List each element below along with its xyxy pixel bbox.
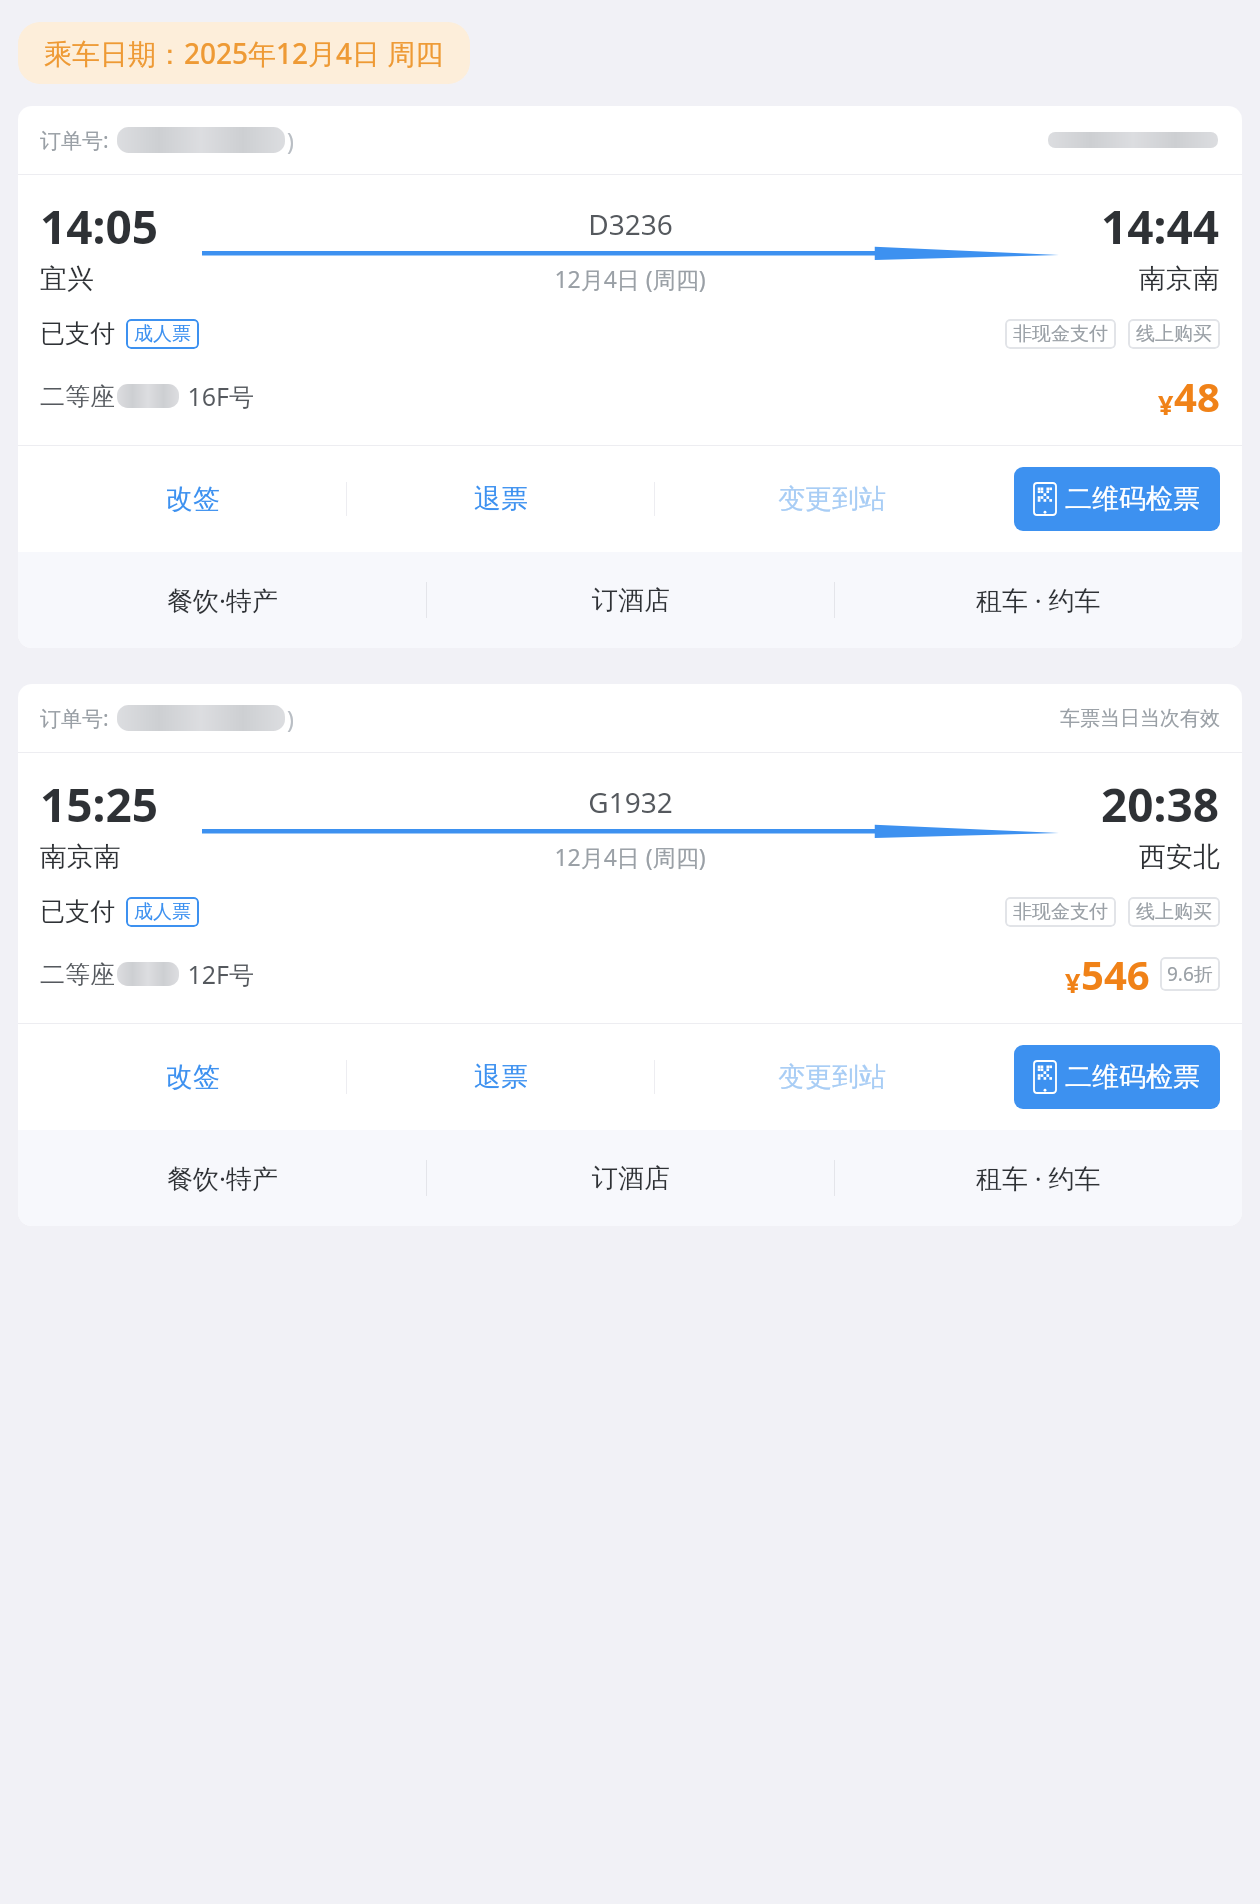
staticText: 12月4日 (周四) — [554, 263, 706, 294]
staticText: 退票 — [474, 482, 528, 516]
staticText: 改签 — [166, 1060, 220, 1094]
staticText: 租车 · 约车 — [976, 1160, 1101, 1196]
staticText: 订单号: — [40, 126, 109, 155]
button[interactable]: 非现金支付 — [1013, 900, 1108, 924]
button[interactable]: 线上购买 — [1136, 900, 1212, 924]
staticText: 线上购买 — [1136, 900, 1212, 924]
staticText: 车票当日当次有效 — [1060, 706, 1220, 731]
staticText: 546 — [1081, 947, 1150, 1001]
staticText: 订酒店 — [592, 1162, 670, 1195]
staticText: 订酒店 — [592, 584, 670, 617]
staticText: 14:44 — [1101, 195, 1220, 258]
staticText: 成人票 — [134, 322, 191, 346]
staticText: 二维码检票 — [1065, 1060, 1200, 1094]
staticText: 14:05 — [40, 195, 159, 258]
staticText: ) — [287, 125, 294, 156]
staticText: 变更到站 — [778, 1060, 886, 1094]
staticText: 15:25 — [40, 773, 159, 836]
staticText: 变更到站 — [778, 482, 886, 516]
staticText: 南京南 — [1139, 262, 1220, 296]
staticText: 12月4日 (周四) — [554, 841, 706, 872]
staticText: 宜兴 — [40, 262, 94, 296]
button[interactable]: 成人票 — [134, 322, 191, 346]
staticText: 乘车日期：2025年12月4日 周四 — [44, 34, 444, 72]
staticText: 12F号 — [181, 957, 255, 991]
staticText: ) — [287, 703, 294, 734]
button[interactable]: 订单号: — [18, 106, 1242, 174]
staticText: 餐饮·特产 — [167, 1160, 278, 1196]
staticText: ¥ — [1065, 964, 1081, 1001]
button[interactable]: 成人票 — [134, 900, 191, 924]
staticText: 已支付 — [40, 896, 115, 927]
staticText: 二维码检票 — [1065, 482, 1200, 516]
button[interactable]: 变更到站 — [655, 446, 1008, 552]
staticText: G1932 — [588, 783, 673, 821]
button[interactable]: 餐饮·特产 — [18, 1130, 426, 1226]
button[interactable]: 改签 — [40, 446, 346, 552]
staticText: 退票 — [474, 1060, 528, 1094]
staticText: 非现金支付 — [1013, 900, 1108, 924]
staticText: 16F号 — [181, 379, 255, 413]
button[interactable]: 租车 · 约车 — [835, 552, 1242, 648]
button[interactable]: 订酒店 — [427, 1130, 834, 1226]
staticText: 成人票 — [134, 900, 191, 924]
staticText: 租车 · 约车 — [976, 582, 1101, 618]
staticText: 西安北 — [1139, 840, 1220, 874]
staticText: 20:38 — [1101, 773, 1220, 836]
button[interactable]: 线上购买 — [1136, 322, 1212, 346]
button[interactable]: 二维码检票 — [1014, 467, 1220, 531]
staticText: 线上购买 — [1136, 322, 1212, 346]
staticText: 非现金支付 — [1013, 322, 1108, 346]
staticText: 已支付 — [40, 318, 115, 349]
staticText: 二等座 — [40, 381, 115, 412]
button[interactable]: 退票 — [347, 1024, 654, 1130]
button[interactable]: 非现金支付 — [1013, 322, 1108, 346]
staticText: 48 — [1174, 369, 1220, 423]
staticText: ¥ — [1158, 386, 1174, 423]
staticText: 南京南 — [40, 840, 121, 874]
button[interactable]: 二维码检票 — [1014, 1045, 1220, 1109]
button[interactable]: 餐饮·特产 — [18, 552, 426, 648]
staticText: D3236 — [588, 205, 673, 243]
button[interactable]: 租车 · 约车 — [835, 1130, 1242, 1226]
staticText: 改签 — [166, 482, 220, 516]
staticText: 9.6折 — [1167, 961, 1213, 987]
button[interactable]: 变更到站 — [655, 1024, 1008, 1130]
button[interactable]: 退票 — [347, 446, 654, 552]
staticText: 餐饮·特产 — [167, 582, 278, 618]
staticText: 二等座 — [40, 959, 115, 990]
staticText: 订单号: — [40, 704, 109, 733]
button[interactable]: 改签 — [40, 1024, 346, 1130]
button[interactable]: 订单号: — [18, 684, 1242, 752]
button[interactable]: 乘车日期：2025年12月4日 周四 — [18, 22, 470, 84]
button[interactable]: 订酒店 — [427, 552, 834, 648]
